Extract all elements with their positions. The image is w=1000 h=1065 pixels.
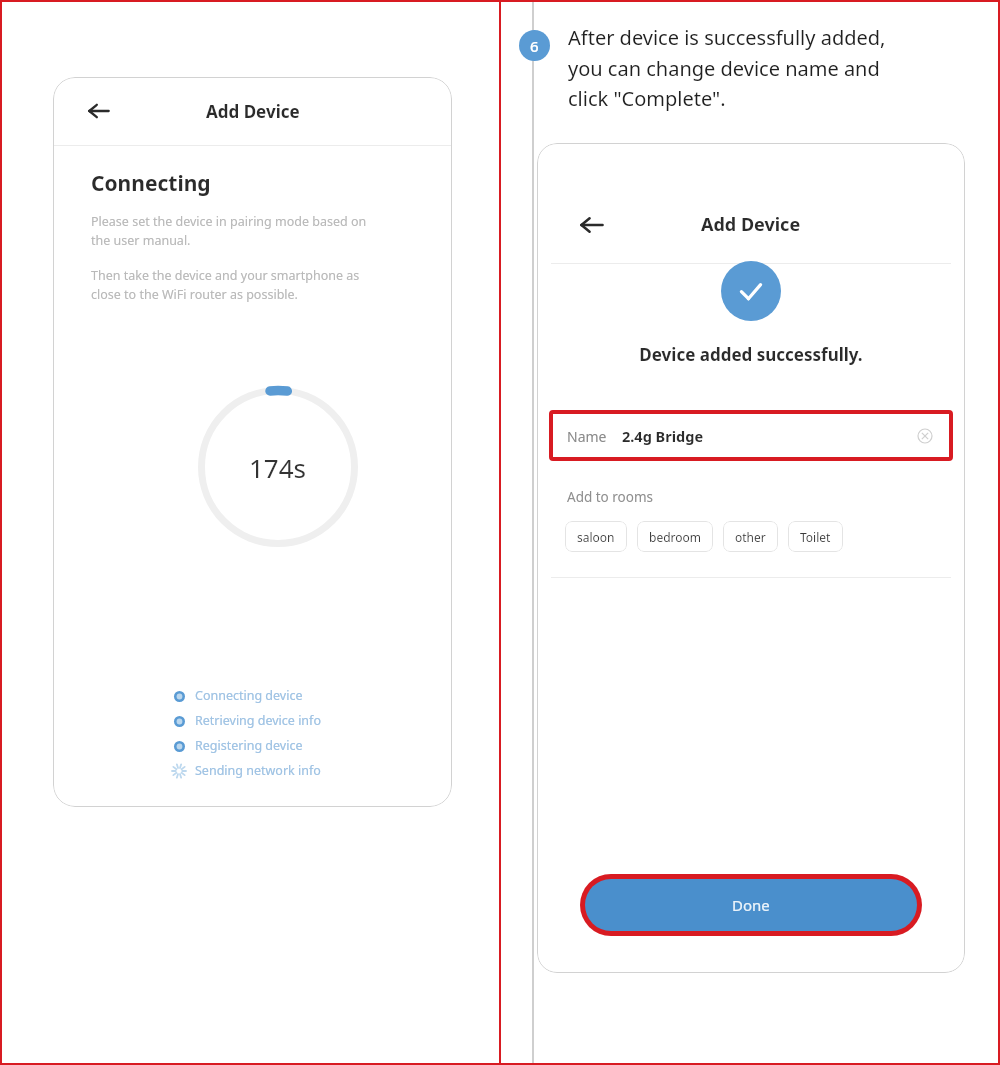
staticText: 174s [249,450,307,485]
staticText: Device added successfully. [537,343,965,366]
button[interactable]: Back [79,91,119,131]
button[interactable]: Toilet [788,521,843,552]
staticText: Toilet [800,529,831,545]
button[interactable]: Name [549,410,953,461]
staticText: saloon [577,529,615,545]
staticText: Name [567,427,607,446]
button[interactable]: Done [585,879,917,931]
button[interactable]: Retrieving device info [171,708,321,733]
staticText: Connecting device [195,687,303,704]
button[interactable]: Sending network info [171,758,321,783]
staticText: Please set the device in pairing mode ba… [91,213,411,249]
staticText: Add Device [206,100,300,123]
button[interactable]: Back [572,205,612,245]
staticText: 2.4g Bridge [622,426,704,446]
staticText: 6 [530,36,539,56]
staticText: Sending network info [195,762,321,779]
staticText: bedroom [649,529,701,545]
button[interactable]: Connecting device [171,683,303,708]
button[interactable]: Registering device [171,733,303,758]
staticText: Registering device [195,737,303,754]
button[interactable]: Clear name [915,426,935,446]
staticText: other [735,529,766,545]
staticText: Add to rooms [567,488,654,506]
staticText: After device is successfully added, you … [568,24,988,111]
button[interactable]: other [723,521,778,552]
staticText: Add Device [701,212,801,237]
staticText: Connecting [91,169,211,198]
staticText: Then take the device and your smartphone… [91,267,411,303]
button[interactable]: saloon [565,521,627,552]
staticText: Retrieving device info [195,712,321,729]
button[interactable]: bedroom [637,521,713,552]
staticText: Done [732,895,770,915]
